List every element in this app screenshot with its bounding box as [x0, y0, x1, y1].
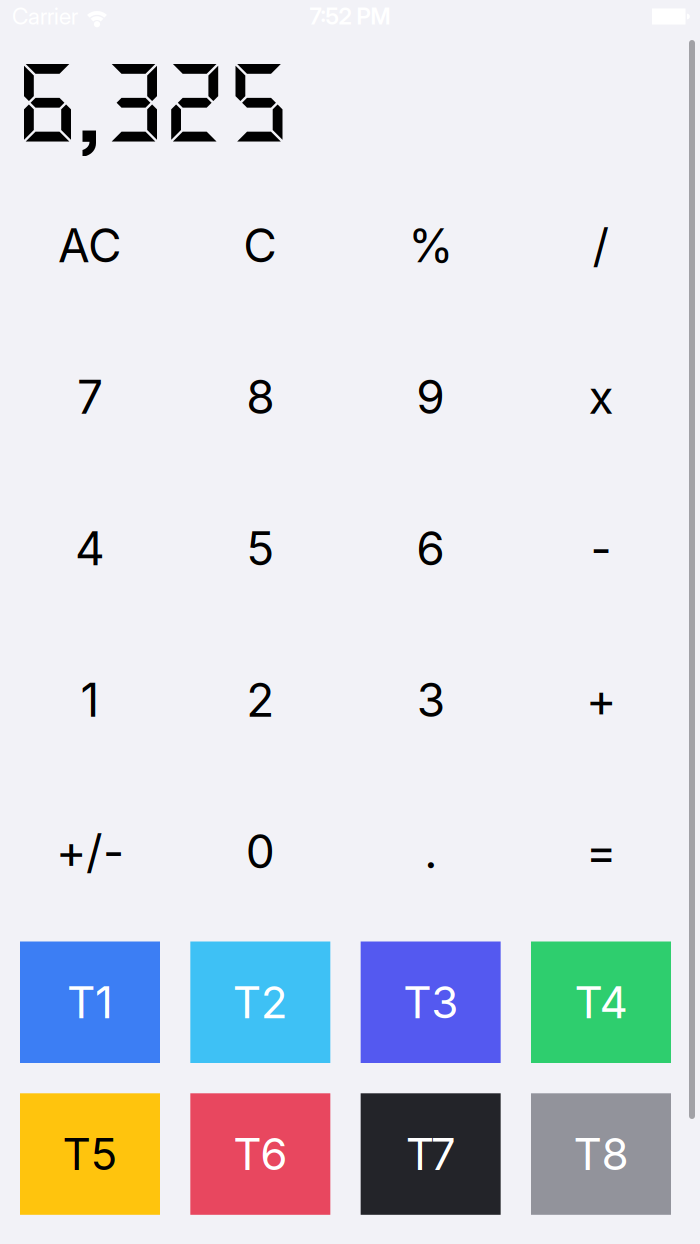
- button[interactable]: 0: [190, 791, 330, 911]
- staticText: 3: [417, 672, 445, 728]
- button[interactable]: =: [531, 791, 671, 911]
- button[interactable]: 8: [190, 337, 330, 457]
- staticText: T2: [233, 976, 288, 1029]
- staticText: T8: [573, 1127, 628, 1181]
- button[interactable]: AC: [20, 185, 160, 305]
- staticText: 7:52 PM: [309, 3, 390, 30]
- button[interactable]: 5: [190, 488, 330, 608]
- staticText: T6: [233, 1127, 287, 1181]
- button[interactable]: /: [531, 185, 671, 305]
- staticText: =: [586, 824, 616, 879]
- button[interactable]: T3: [361, 941, 501, 1063]
- staticText: %: [408, 218, 453, 273]
- staticText: 7: [77, 369, 103, 425]
- staticText: T1: [67, 976, 113, 1029]
- staticText: AC: [58, 218, 122, 273]
- button[interactable]: +/-: [20, 791, 160, 911]
- button[interactable]: 9: [361, 337, 501, 457]
- button[interactable]: 3: [361, 640, 501, 760]
- button[interactable]: T7: [361, 1093, 501, 1215]
- button[interactable]: .: [361, 791, 501, 911]
- button[interactable]: T6: [190, 1093, 330, 1215]
- staticText: 1: [80, 672, 99, 728]
- button[interactable]: 4: [20, 488, 160, 608]
- staticText: T4: [574, 976, 627, 1029]
- staticText: x: [588, 369, 613, 425]
- staticText: 8: [246, 369, 274, 425]
- button[interactable]: -: [531, 488, 671, 608]
- button[interactable]: T8: [531, 1093, 671, 1215]
- button[interactable]: x: [531, 337, 671, 457]
- button[interactable]: C: [190, 185, 330, 305]
- button[interactable]: +: [531, 640, 671, 760]
- staticText: .: [424, 824, 437, 879]
- staticText: +/-: [56, 824, 124, 879]
- button[interactable]: T4: [531, 941, 671, 1063]
- button[interactable]: 2: [190, 640, 330, 760]
- staticText: T3: [403, 976, 458, 1029]
- button[interactable]: T2: [190, 941, 330, 1063]
- staticText: C: [243, 218, 277, 273]
- staticText: 0: [246, 824, 275, 879]
- button[interactable]: 6: [361, 488, 501, 608]
- button[interactable]: 7: [20, 337, 160, 457]
- button[interactable]: %: [361, 185, 501, 305]
- staticText: T7: [406, 1127, 456, 1181]
- staticText: 5: [246, 521, 274, 576]
- staticText: 6: [416, 521, 445, 576]
- staticText: /: [592, 218, 609, 273]
- staticText: Carrier: [12, 3, 78, 30]
- staticText: 2: [246, 672, 274, 728]
- staticText: -: [590, 521, 611, 576]
- staticText: 4: [75, 521, 105, 576]
- button[interactable]: T1: [20, 941, 160, 1063]
- staticText: +: [586, 672, 616, 728]
- staticText: 9: [416, 369, 445, 425]
- staticText: T5: [62, 1127, 117, 1181]
- button[interactable]: T5: [20, 1093, 160, 1215]
- button[interactable]: 1: [20, 640, 160, 760]
